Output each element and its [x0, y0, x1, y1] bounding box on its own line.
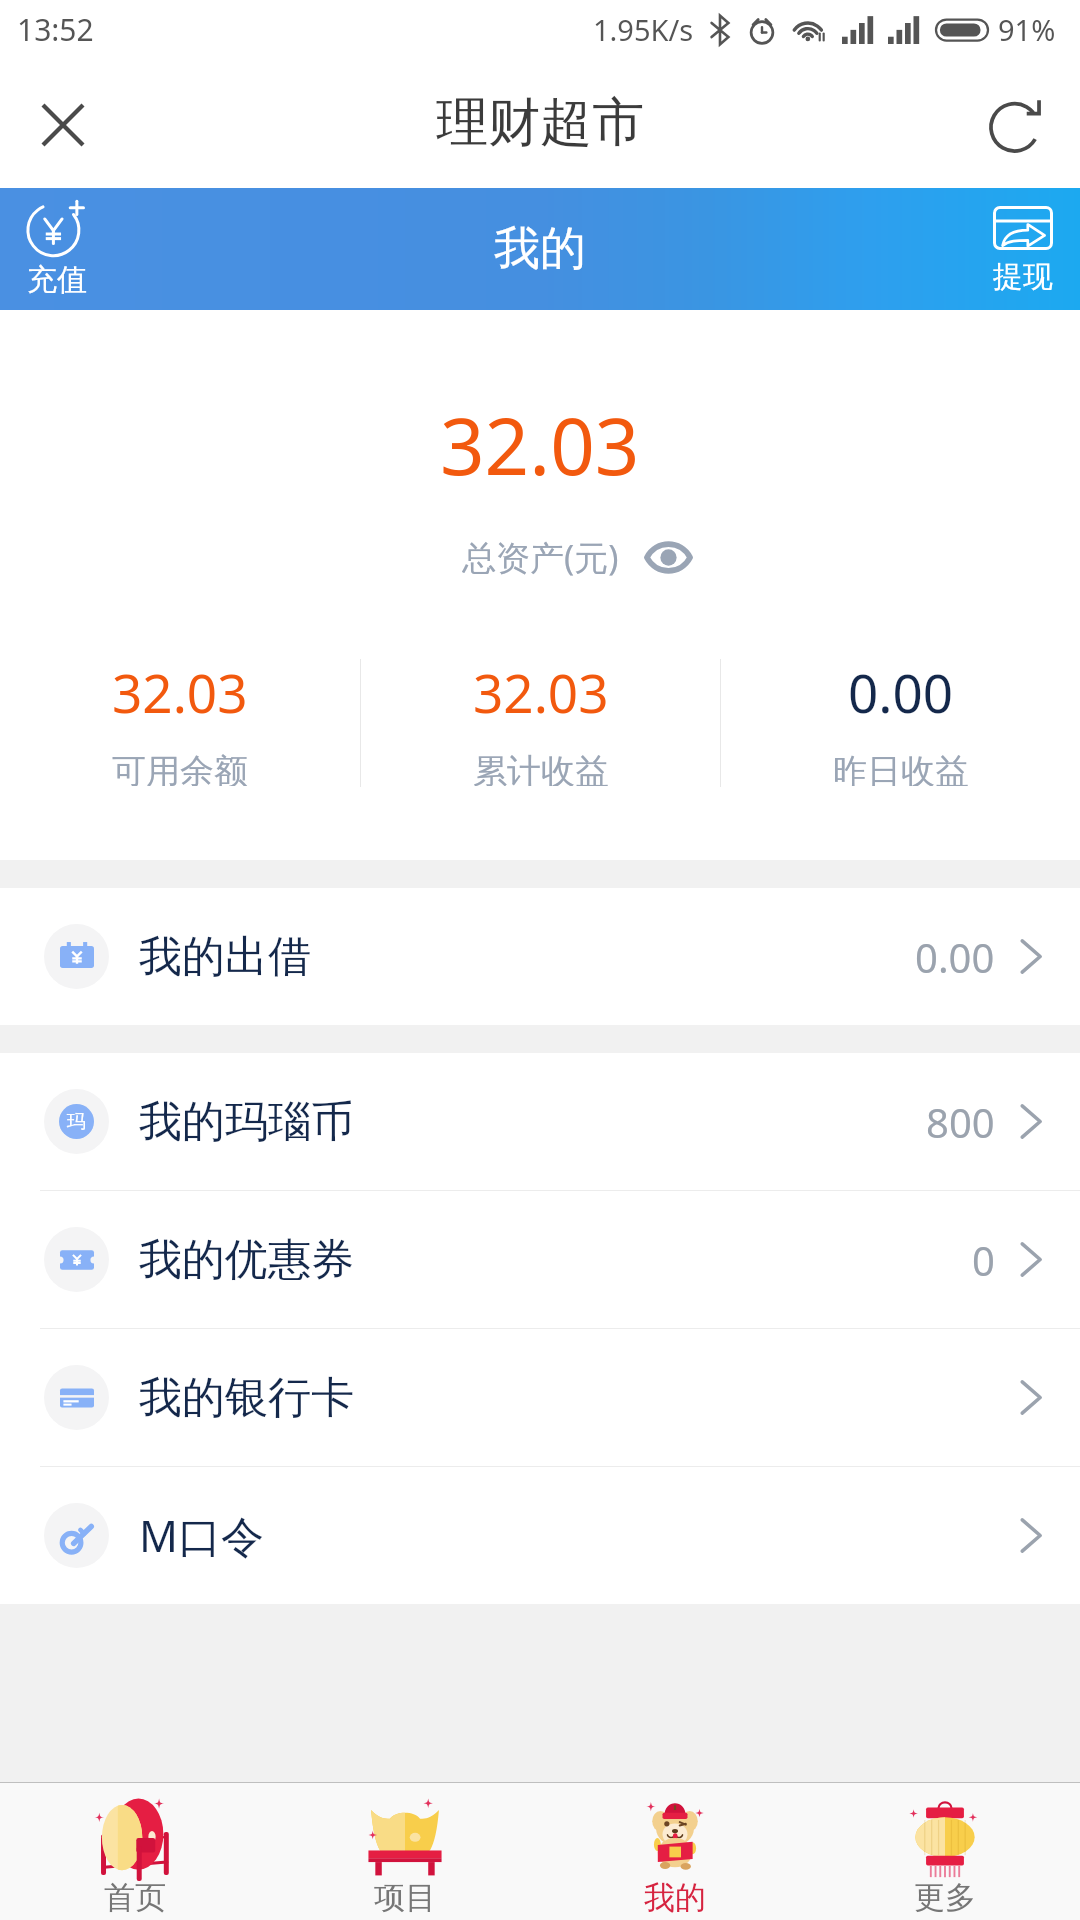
- button[interactable]: 首页: [0, 1783, 270, 1920]
- staticText: 0.00: [848, 656, 954, 728]
- staticText: 0: [972, 1233, 995, 1287]
- staticText: 玛: [67, 1110, 86, 1134]
- button[interactable]: 我的优惠券: [0, 1191, 1080, 1328]
- staticText: 总资产(元): [462, 534, 619, 580]
- staticText: 理财超市: [436, 90, 644, 156]
- staticText: 充值: [27, 261, 87, 299]
- staticText: 更多: [914, 1878, 976, 1917]
- staticText: 800: [926, 1095, 995, 1149]
- staticText: 提现: [993, 258, 1053, 296]
- button[interactable]: Refresh: [954, 62, 1080, 188]
- staticText: 昨日收益: [833, 750, 969, 786]
- button[interactable]: M口令: [0, 1467, 1080, 1604]
- staticText: 13:52: [17, 9, 94, 50]
- staticText: 我的玛瑙币: [139, 1095, 354, 1149]
- button[interactable]: 32.03: [0, 656, 360, 786]
- staticText: 我的银行卡: [139, 1371, 354, 1425]
- button[interactable]: 提现: [966, 188, 1080, 310]
- button[interactable]: 我的: [540, 1783, 810, 1920]
- staticText: 1.95K/s: [593, 10, 694, 49]
- button[interactable]: 32.03: [361, 656, 720, 786]
- staticText: 32.03: [473, 656, 609, 728]
- staticText: 0.00: [915, 930, 995, 984]
- staticText: 91%: [998, 10, 1056, 49]
- staticText: 我的: [644, 1878, 706, 1917]
- staticText: 我的出借: [139, 930, 311, 984]
- button[interactable]: 更多: [810, 1783, 1080, 1920]
- button[interactable]: 项目: [270, 1783, 540, 1920]
- staticText: 32.03: [440, 392, 640, 498]
- button[interactable]: 0.00: [721, 656, 1080, 786]
- button[interactable]: 我的银行卡: [0, 1329, 1080, 1466]
- staticText: 我的优惠券: [139, 1233, 354, 1287]
- staticText: 累计收益: [473, 750, 609, 786]
- staticText: 可用余额: [112, 750, 248, 786]
- button[interactable]: Toggle amount visibility: [645, 539, 692, 576]
- button[interactable]: 我的出借: [0, 888, 1080, 1025]
- button[interactable]: Close: [0, 62, 126, 188]
- staticText: M口令: [139, 1506, 265, 1565]
- button[interactable]: 充值: [0, 188, 114, 310]
- staticText: 我的: [494, 220, 586, 278]
- staticText: 项目: [374, 1878, 436, 1917]
- button[interactable]: 玛: [0, 1053, 1080, 1190]
- staticText: 32.03: [112, 656, 248, 728]
- staticText: 首页: [104, 1878, 166, 1917]
